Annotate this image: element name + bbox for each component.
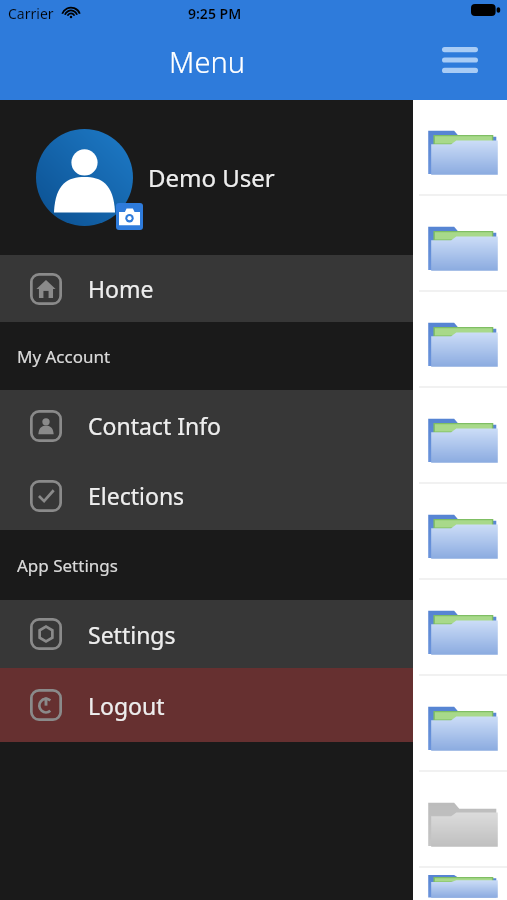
staticText: Elections: [88, 480, 185, 511]
button[interactable]: Logout: [0, 668, 413, 742]
button[interactable]: [413, 868, 507, 900]
staticText: Contact Info: [88, 410, 222, 441]
staticText: My Account: [17, 345, 111, 368]
staticText: Settings: [88, 619, 176, 650]
staticText: Logout: [88, 690, 165, 721]
button[interactable]: [413, 100, 507, 196]
staticText: 9:25 PM: [188, 4, 242, 23]
button[interactable]: [413, 772, 507, 868]
staticText: Demo User: [148, 161, 275, 194]
button[interactable]: Elections: [0, 461, 413, 530]
button[interactable]: [413, 388, 507, 484]
button[interactable]: [413, 676, 507, 772]
staticText: App Settings: [17, 554, 118, 577]
button[interactable]: Home: [0, 255, 413, 322]
button[interactable]: Contact Info: [0, 390, 413, 461]
staticText: Carrier: [8, 4, 54, 23]
button[interactable]: [413, 580, 507, 676]
button[interactable]: [413, 484, 507, 580]
button[interactable]: [413, 196, 507, 292]
button[interactable]: Change photo: [116, 203, 143, 230]
staticText: Menu: [169, 42, 245, 81]
button[interactable]: Open menu: [413, 0, 507, 100]
button[interactable]: [413, 292, 507, 388]
button[interactable]: Change photo: [0, 100, 413, 255]
staticText: Home: [88, 273, 154, 304]
button[interactable]: Settings: [0, 600, 413, 668]
